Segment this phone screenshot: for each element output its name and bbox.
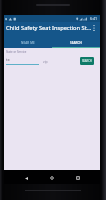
button[interactable]: NEAR ME: [4, 37, 52, 49]
staticText: NEAR ME: [21, 41, 35, 45]
button[interactable]: Back: [17, 171, 35, 185]
staticText: Child Safety Seat Inspection St...: [6, 24, 92, 32]
staticText: SEARCH: [70, 41, 82, 45]
button[interactable]: Home: [43, 171, 61, 185]
button[interactable]: SEARCH: [52, 37, 100, 49]
staticText: State or Service: [6, 50, 27, 54]
staticText: zip: [43, 59, 48, 64]
button[interactable]: SEARCH: [80, 57, 94, 65]
staticText: SEARCH: [82, 59, 92, 63]
staticText: tx: [6, 57, 10, 63]
staticText: 6:41: [90, 16, 98, 21]
button[interactable]: More options: [88, 22, 100, 34]
button[interactable]: Recent apps: [69, 171, 87, 185]
